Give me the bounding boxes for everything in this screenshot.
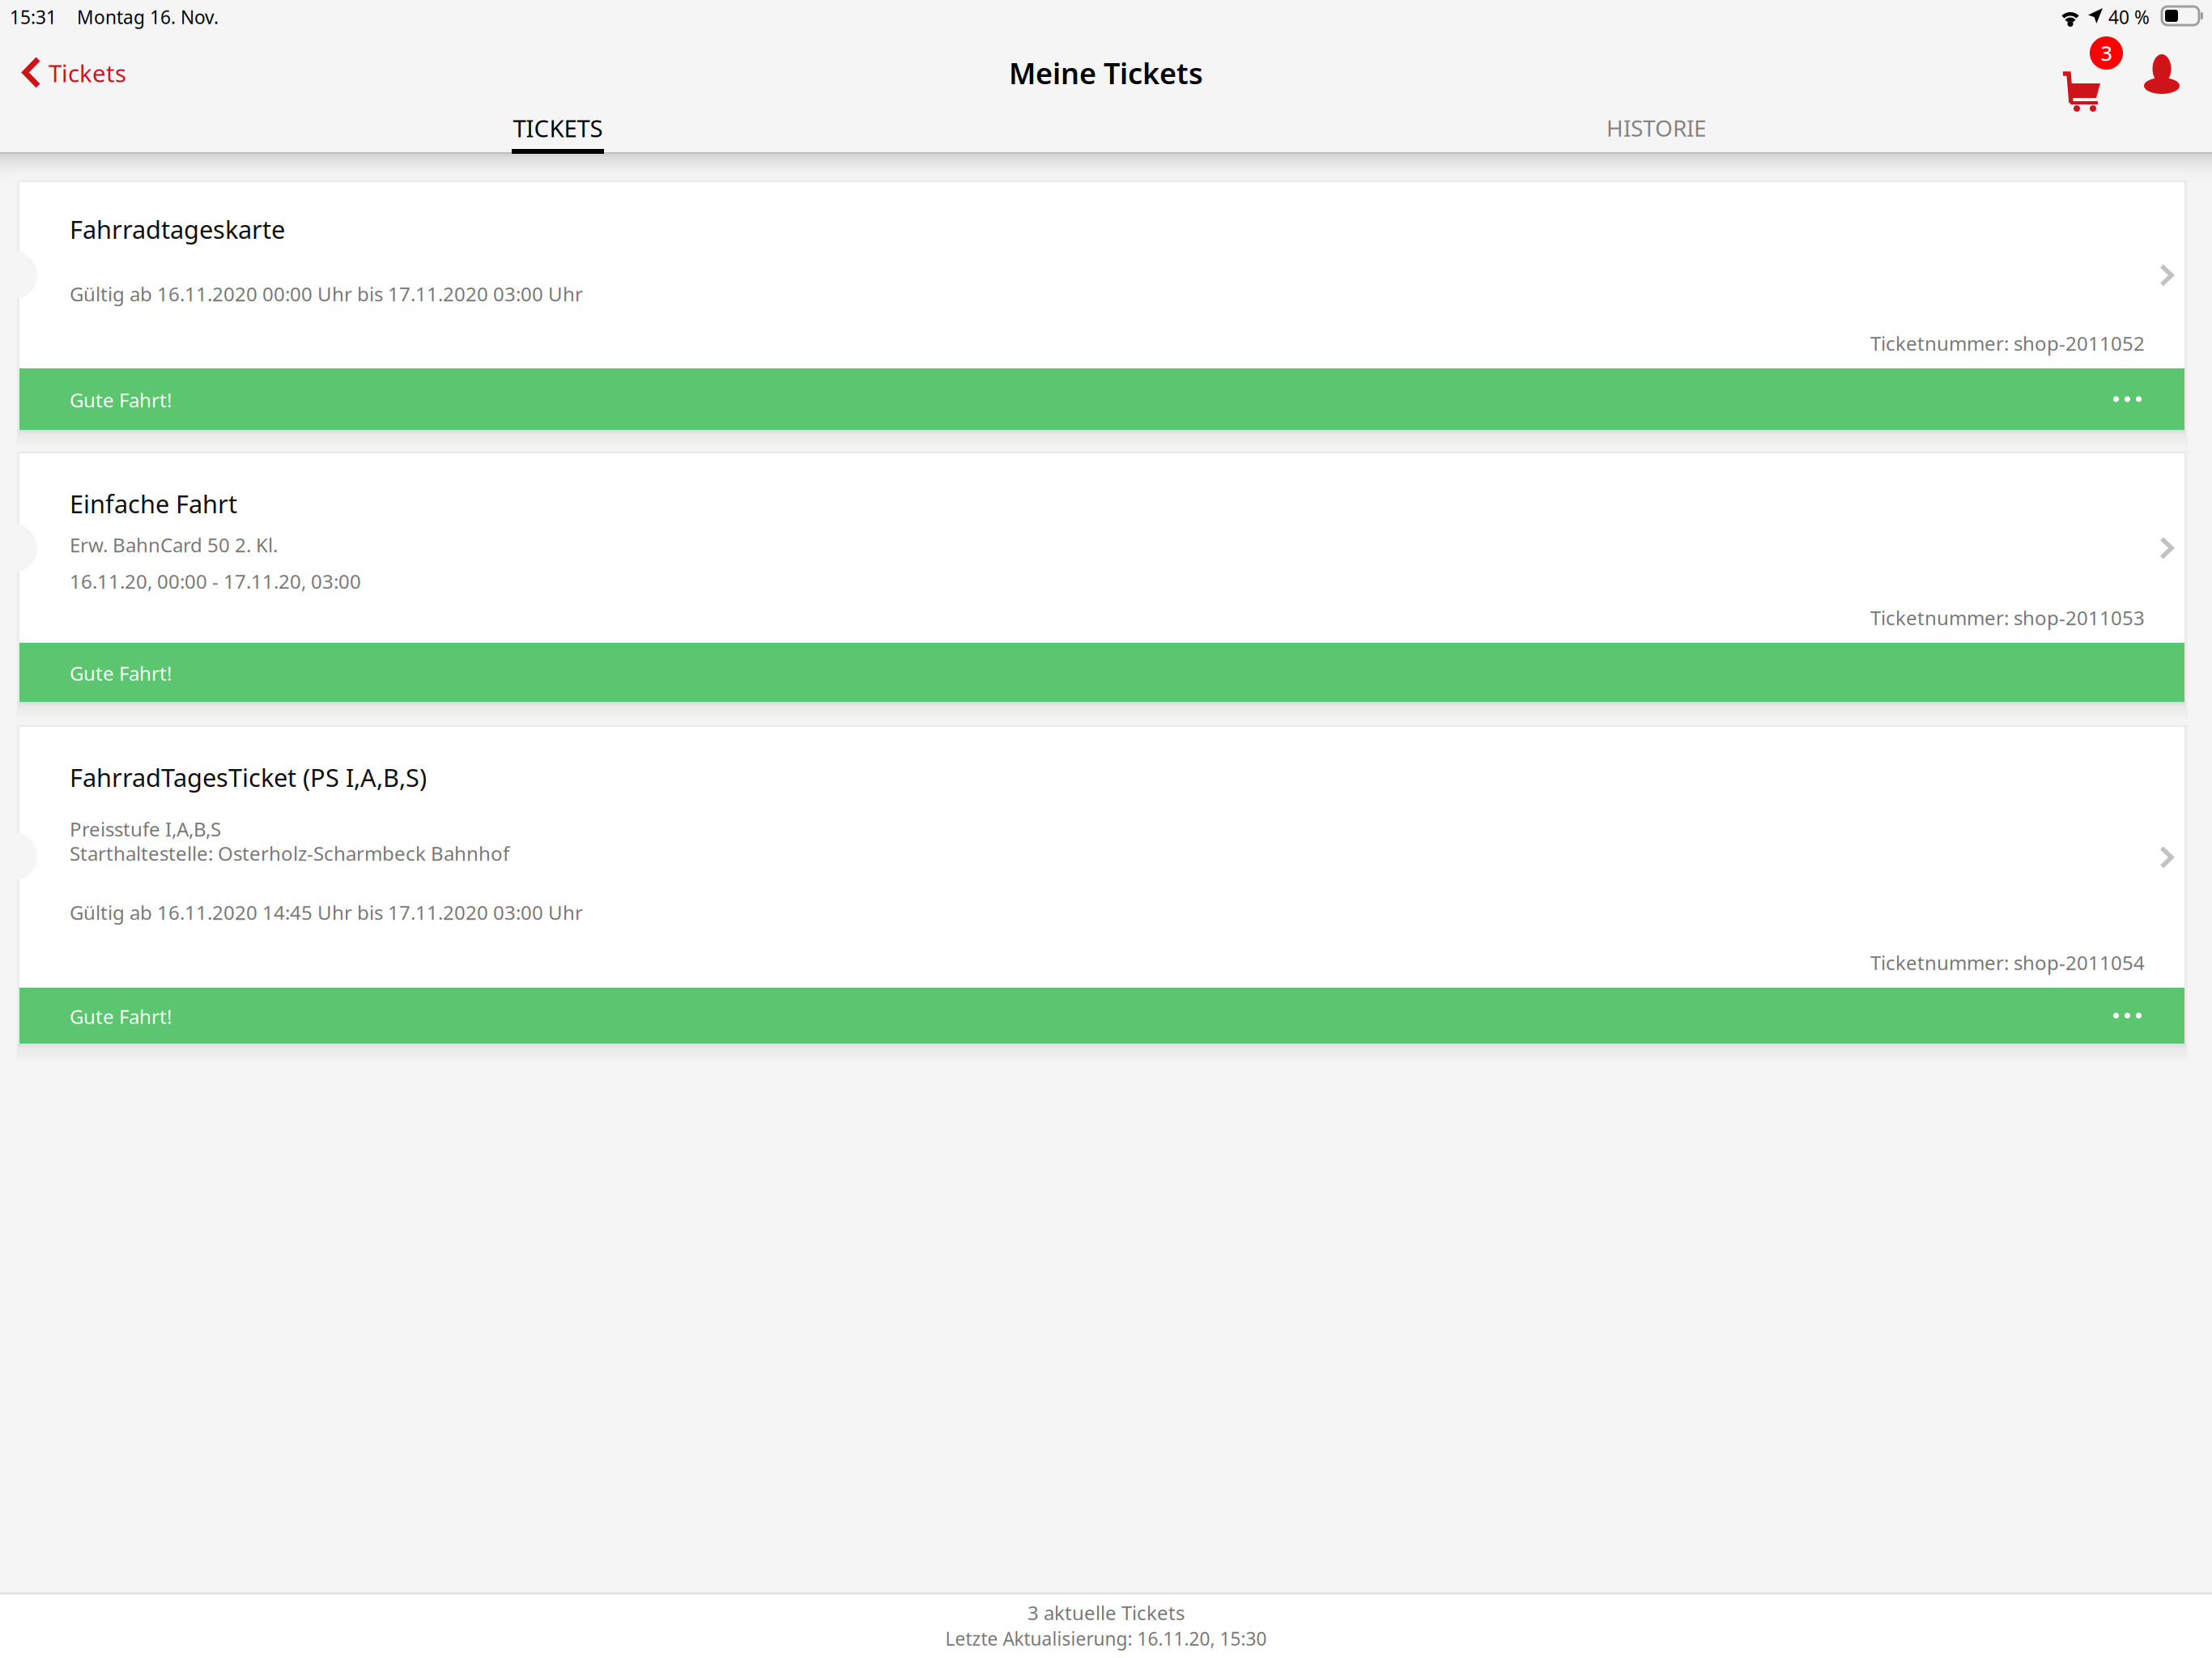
staticText: Gute Fahrt! [70, 387, 172, 413]
staticText: Starthaltestelle: Osterholz-Scharmbeck B… [70, 840, 509, 866]
staticText: 3 [2101, 39, 2112, 67]
staticText: Tickets [49, 57, 126, 89]
button[interactable]: TICKETS [0, 108, 1106, 154]
staticText: Gute Fahrt! [70, 660, 172, 686]
staticText: FahrradTagesTicket (PS I,A,B,S) [70, 761, 427, 794]
staticText: Preisstufe I,A,B,S [70, 816, 221, 842]
staticText: Gültig ab 16.11.2020 00:00 Uhr bis 17.11… [70, 281, 583, 307]
button[interactable]: Profil [2138, 50, 2186, 96]
staticText: HISTORIE [1606, 113, 1707, 143]
staticText: Gute Fahrt! [70, 1004, 172, 1029]
staticText: Einfache Fahrt [70, 487, 237, 520]
staticText: Letzte Aktualisierung: 16.11.20, 15:30 [945, 1626, 1267, 1651]
button[interactable]: Warenkorb [2052, 63, 2113, 113]
staticText: Ticketnummer: shop-2011052 [1870, 330, 2145, 356]
staticText: Ticketnummer: shop-2011054 [1870, 950, 2145, 976]
staticText: Fahrradtageskarte [70, 213, 285, 246]
staticText: Montag 16. Nov. [77, 5, 219, 29]
staticText: Erw. BahnCard 50 2. Kl. [70, 532, 278, 558]
staticText: 40 % [2108, 5, 2150, 29]
staticText: 3 aktuelle Tickets [1027, 1600, 1185, 1626]
staticText: Ticketnummer: shop-2011053 [1870, 605, 2145, 631]
button[interactable]: FahrradTagesTicket (PS I,A,B,S) [19, 727, 2184, 1044]
staticText: 15:31 [10, 5, 57, 29]
button[interactable]: HISTORIE [1106, 108, 2212, 154]
staticText: Gültig ab 16.11.2020 14:45 Uhr bis 17.11… [70, 900, 583, 925]
button[interactable]: Einfache Fahrt [19, 453, 2184, 702]
staticText: 16.11.20, 00:00 - 17.11.20, 03:00 [70, 568, 361, 594]
button[interactable]: Tickets [8, 42, 194, 102]
staticText: Meine Tickets [1009, 54, 1203, 92]
button[interactable]: Fahrradtageskarte [19, 182, 2184, 430]
staticText: TICKETS [513, 112, 603, 144]
